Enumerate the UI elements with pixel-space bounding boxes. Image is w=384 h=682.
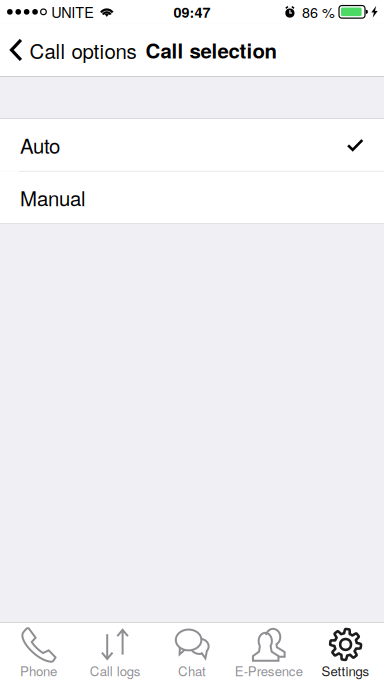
staticText: 86 % — [302, 1, 335, 22]
button[interactable]: Phone — [0, 623, 77, 682]
staticText: 09:47 — [173, 1, 210, 22]
staticText: Manual — [20, 183, 86, 212]
staticText: E-Presence — [235, 661, 303, 680]
button[interactable]: E-Presence — [230, 623, 307, 682]
staticText: Settings — [322, 661, 370, 680]
staticText: Auto — [20, 130, 60, 159]
button[interactable]: Manual — [0, 172, 384, 224]
button[interactable]: Call options — [0, 24, 145, 76]
staticText: Call logs — [90, 661, 141, 680]
button[interactable]: Auto — [0, 119, 384, 171]
button[interactable]: Settings — [307, 623, 384, 682]
button[interactable]: Chat — [154, 623, 230, 682]
staticText: UNITE — [51, 1, 94, 22]
staticText: Phone — [20, 661, 57, 680]
button[interactable]: Call logs — [77, 623, 154, 682]
staticText: Call options — [29, 35, 136, 65]
staticText: Call selection — [145, 35, 276, 65]
staticText: Chat — [178, 661, 206, 680]
